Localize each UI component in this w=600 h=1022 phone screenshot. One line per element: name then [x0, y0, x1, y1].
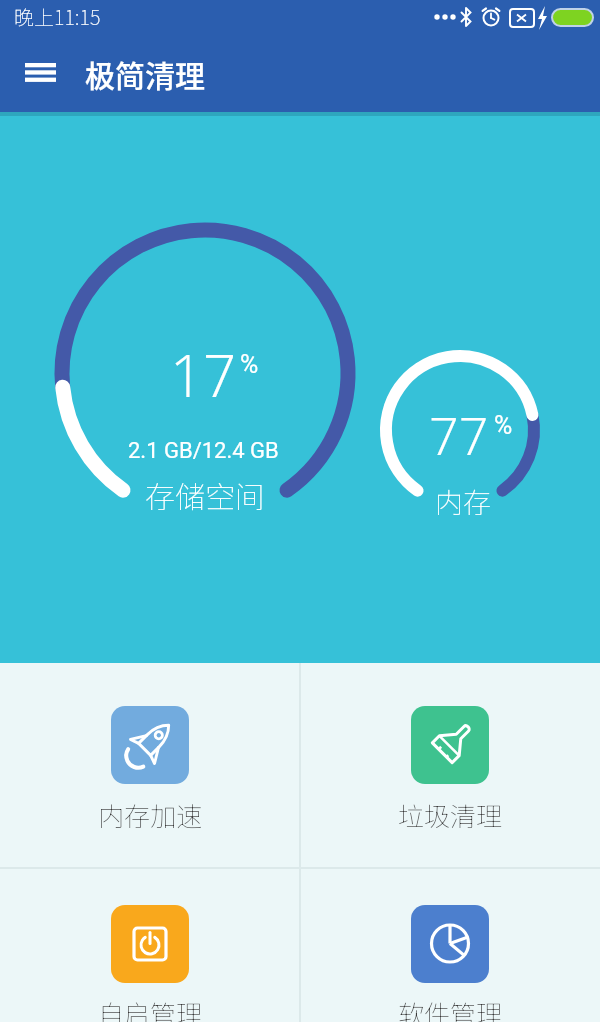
staticText: 内存加速 — [98, 796, 203, 834]
staticText: 垃圾清理 — [398, 796, 503, 834]
staticText: 软件管理 — [398, 994, 503, 1022]
staticText: 晚上11:15 — [14, 2, 101, 31]
button[interactable]: 内存加速 — [0, 663, 300, 867]
button[interactable]: 垃圾清理 — [300, 663, 600, 867]
button[interactable]: 软件管理 — [300, 869, 600, 1022]
staticText: 内存 — [435, 481, 492, 522]
staticText: 2.1 GB/12.4 GB — [128, 438, 279, 464]
staticText: 自启管理 — [98, 994, 203, 1022]
staticText: 存储空间 — [145, 473, 265, 516]
staticText: 17 — [170, 335, 237, 414]
staticText: 极简清理 — [85, 52, 205, 95]
staticText: 77 — [429, 399, 489, 469]
staticText: % — [494, 411, 513, 440]
button[interactable]: 自启管理 — [0, 869, 300, 1022]
staticText: % — [240, 350, 259, 379]
button[interactable] — [14, 48, 66, 96]
